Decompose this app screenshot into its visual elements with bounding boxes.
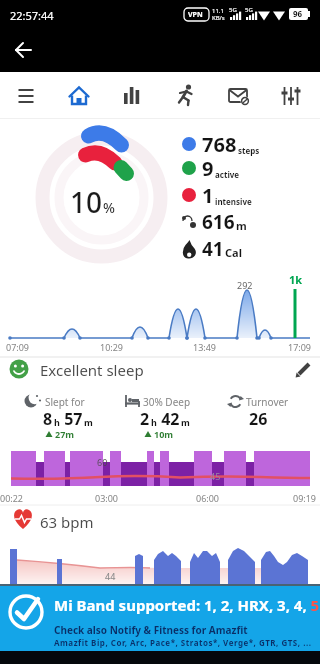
button[interactable]	[6, 34, 40, 68]
staticText: 03:00	[95, 492, 119, 504]
staticText: 09:19	[293, 492, 317, 504]
staticText: 96	[293, 8, 303, 19]
staticText: 07:09	[6, 341, 30, 353]
staticText: 2	[140, 408, 150, 430]
staticText: 30% Deep	[143, 395, 191, 409]
staticText: 11.1	[212, 7, 224, 15]
button[interactable]	[165, 75, 205, 115]
staticText: 5G	[245, 6, 253, 14]
button[interactable]	[288, 356, 316, 382]
button[interactable]	[218, 75, 258, 115]
staticText: KB/s	[212, 14, 225, 22]
staticText: 41	[202, 236, 224, 262]
staticText: 10	[70, 183, 103, 221]
button[interactable]	[271, 75, 311, 115]
button[interactable]	[112, 75, 152, 115]
staticText: 44	[105, 570, 116, 582]
staticText: m	[181, 416, 190, 428]
staticText: 63 bpm	[40, 512, 94, 532]
staticText: Turnover	[246, 395, 289, 409]
staticText: Check also Notify & Fitness for Amazfit	[54, 623, 248, 637]
staticText: steps	[238, 145, 260, 156]
staticText: Cal	[225, 245, 242, 260]
staticText: 57	[60, 408, 83, 430]
staticText: Amazfit Bip, Cor, Arc, Pace*, Stratos*, …	[54, 637, 312, 648]
staticText: 1	[202, 182, 214, 209]
staticText: m	[236, 218, 247, 233]
staticText: h	[54, 416, 60, 428]
staticText: 10m	[154, 428, 174, 440]
staticText: 60	[97, 456, 108, 468]
staticText: 06:00	[196, 492, 220, 504]
staticText: 26	[249, 408, 268, 430]
button[interactable]	[6, 75, 46, 115]
button[interactable]: Mi Band supported: 1, 2, HRX, 3, 4, 5	[0, 586, 320, 651]
staticText: 17:09	[288, 341, 312, 353]
staticText: h	[151, 416, 157, 428]
staticText: 42	[157, 408, 180, 430]
staticText: 13:49	[193, 341, 217, 353]
staticText: VPN	[188, 10, 203, 20]
staticText: intensive	[215, 196, 252, 207]
staticText: 00:22	[0, 492, 24, 504]
staticText: 1k	[289, 272, 303, 287]
staticText: 5G	[229, 6, 237, 14]
staticText: m	[84, 416, 93, 428]
staticText: 9	[202, 155, 214, 182]
staticText: 27m	[55, 428, 75, 440]
staticText: 292	[237, 279, 253, 291]
staticText: 22:57:44	[10, 8, 54, 23]
staticText: 8	[43, 408, 53, 430]
staticText: 45	[210, 470, 221, 482]
button[interactable]	[59, 75, 99, 115]
staticText: active	[215, 169, 240, 180]
staticText: Mi Band supported: 1, 2, HRX, 3, 4, 5	[54, 595, 320, 615]
staticText: Slept for	[45, 395, 85, 409]
staticText: %	[103, 198, 115, 217]
staticText: 616	[202, 209, 235, 235]
staticText: 10:29	[100, 341, 124, 353]
staticText: 768	[202, 131, 237, 158]
staticText: Excellent sleep	[40, 360, 144, 380]
